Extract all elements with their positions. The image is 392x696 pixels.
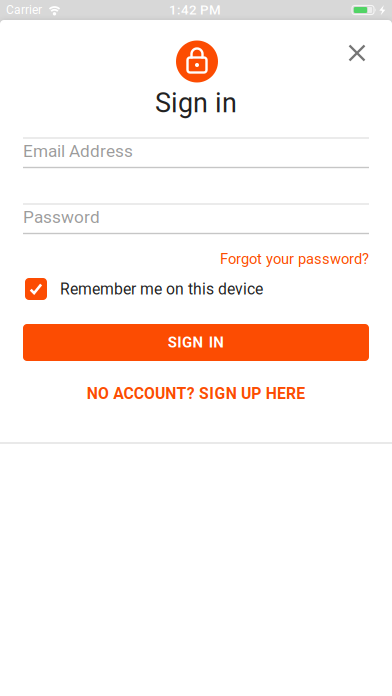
- button[interactable]: Forgot your password?: [220, 250, 369, 268]
- button[interactable]: NO ACCOUNT? SIGN UP HERE: [87, 384, 305, 403]
- staticText: Carrier: [6, 3, 42, 17]
- staticText: 1:42 PM: [169, 2, 221, 18]
- staticText: Password: [23, 207, 100, 227]
- button[interactable]: Remember me on this device: [23, 278, 263, 300]
- staticText: Forgot your password?: [220, 250, 369, 268]
- staticText: Email Address: [23, 141, 133, 161]
- staticText: Sign in: [155, 87, 237, 119]
- button[interactable]: [343, 39, 371, 67]
- staticText: Remember me on this device: [60, 280, 263, 298]
- staticText: SIGN IN: [168, 334, 224, 351]
- staticText: NO ACCOUNT? SIGN UP HERE: [87, 384, 305, 403]
- button[interactable]: SIGN IN: [23, 324, 369, 361]
